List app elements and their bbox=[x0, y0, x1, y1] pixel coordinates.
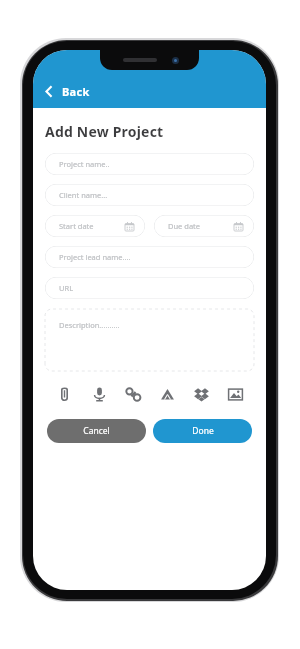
button[interactable]: Dropbox bbox=[184, 383, 218, 405]
button[interactable]: Project name.. bbox=[45, 153, 254, 175]
staticText: Add New Project bbox=[45, 122, 164, 141]
staticText: Cancel bbox=[83, 425, 110, 437]
staticText: Project lead name.... bbox=[59, 252, 131, 262]
button[interactable]: Done bbox=[153, 419, 252, 443]
staticText: Start date bbox=[59, 221, 94, 231]
staticText: Back bbox=[62, 84, 90, 99]
staticText: URL bbox=[59, 283, 74, 293]
button[interactable]: Add image bbox=[218, 383, 252, 405]
staticText: Client name... bbox=[59, 190, 108, 200]
button[interactable]: Record audio bbox=[82, 383, 116, 405]
button[interactable]: Start date bbox=[45, 215, 145, 237]
staticText: Due date bbox=[168, 221, 201, 231]
button[interactable]: Cancel bbox=[47, 419, 146, 443]
button[interactable]: Google Drive bbox=[150, 383, 184, 405]
button[interactable]: URL bbox=[45, 277, 254, 299]
staticText: Description.......... bbox=[59, 320, 120, 330]
button[interactable]: Project lead name.... bbox=[45, 246, 254, 268]
button[interactable]: Description.......... bbox=[45, 309, 254, 371]
staticText: Done bbox=[192, 425, 214, 437]
button[interactable]: Back bbox=[41, 81, 94, 102]
button[interactable]: Client name... bbox=[45, 184, 254, 206]
button[interactable]: Add link bbox=[116, 383, 150, 405]
button[interactable]: Due date bbox=[154, 215, 254, 237]
button[interactable]: Attach file bbox=[47, 383, 82, 405]
staticText: Project name.. bbox=[59, 159, 110, 169]
